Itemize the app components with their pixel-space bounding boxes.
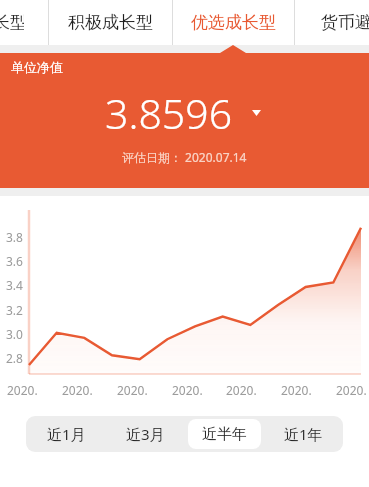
- staticText: 3.2: [6, 302, 23, 318]
- button[interactable]: 近半年: [188, 419, 261, 449]
- button[interactable]: Show net value details: [247, 104, 265, 122]
- staticText: 2020.: [281, 382, 312, 398]
- button[interactable]: 近1年: [267, 419, 340, 449]
- staticText: 成长型: [0, 12, 24, 33]
- staticText: 3.8596: [105, 85, 233, 141]
- staticText: 货币避: [321, 12, 369, 33]
- staticText: 近3月: [126, 424, 165, 444]
- staticText: 积极成长型: [68, 12, 153, 33]
- staticText: 2020.: [226, 382, 257, 398]
- staticText: 2020.: [7, 382, 38, 398]
- staticText: 2020.: [117, 382, 148, 398]
- staticText: 优选成长型: [191, 12, 276, 33]
- staticText: 2.8: [6, 350, 23, 366]
- staticText: 3.6: [6, 253, 23, 269]
- staticText: 评估日期： 2020.07.14: [122, 149, 247, 165]
- staticText: 2020.: [336, 382, 367, 398]
- staticText: 单位净值: [11, 59, 63, 75]
- button[interactable]: 货币避: [295, 0, 369, 45]
- staticText: 3.8: [6, 229, 23, 245]
- button[interactable]: 优选成长型: [173, 0, 294, 45]
- staticText: 近1月: [47, 424, 86, 444]
- button[interactable]: 近1月: [29, 419, 103, 449]
- staticText: 2020.: [62, 382, 93, 398]
- staticText: 3.4: [6, 277, 23, 293]
- button[interactable]: 积极成长型: [49, 0, 172, 45]
- staticText: 3.0: [6, 326, 23, 342]
- staticText: 2020.: [172, 382, 203, 398]
- button[interactable]: 成长型: [0, 0, 48, 45]
- button[interactable]: 近3月: [109, 419, 182, 449]
- staticText: 近半年: [202, 425, 247, 444]
- staticText: 近1年: [284, 424, 323, 444]
